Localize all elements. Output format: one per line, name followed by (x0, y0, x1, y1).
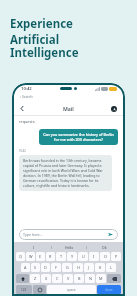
button[interactable]: Key (16, 274, 29, 283)
staticText: Can you summarize the history of Berlin … (43, 132, 114, 142)
button[interactable]: Q (16, 252, 25, 261)
button[interactable]: E (36, 252, 45, 261)
button[interactable]: U (78, 252, 88, 261)
staticText: Mail (63, 105, 74, 112)
staticText: S (34, 265, 37, 270)
button[interactable]: I (89, 252, 99, 261)
staticText: space (67, 288, 76, 292)
staticText: Artificial Intelligence (10, 32, 129, 61)
other: Send (107, 231, 114, 238)
staticText: B (78, 276, 81, 281)
staticText: 123 (21, 288, 27, 292)
staticText: Q (19, 254, 22, 259)
staticText: H (77, 265, 80, 270)
staticText: U (82, 254, 85, 259)
button[interactable]: J (84, 263, 94, 272)
staticText: C (56, 276, 59, 281)
staticText: E (39, 254, 42, 259)
button[interactable]: K (95, 263, 105, 272)
button[interactable]: Back (18, 104, 27, 113)
button[interactable]: Key (107, 274, 121, 283)
staticText: A (24, 265, 27, 270)
staticText: Experience (10, 16, 73, 32)
button[interactable]: C (52, 274, 62, 283)
button[interactable]: Can you summarize the history of Berlin … (39, 129, 118, 145)
staticText: Hello (65, 245, 74, 250)
button[interactable]: B (74, 274, 84, 283)
button[interactable]: T (56, 252, 66, 261)
button[interactable]: Berlin was founded in the 13th century, … (19, 155, 112, 191)
button[interactable]: I (16, 244, 51, 250)
button[interactable]: Y (67, 252, 77, 261)
staticText: O (104, 254, 107, 259)
staticText: Ok (102, 245, 107, 250)
button[interactable]: R (46, 252, 55, 261)
staticText: J (88, 265, 90, 270)
button[interactable]: Ok (87, 244, 121, 250)
button[interactable]: Type here... (19, 229, 118, 240)
staticText: ‹ Search (20, 94, 33, 99)
staticText: L (110, 265, 112, 270)
button[interactable]: N (85, 274, 95, 283)
staticText: I (93, 254, 95, 259)
staticText: D (44, 265, 47, 270)
button[interactable]: Hello (52, 244, 86, 250)
staticText: N (89, 276, 92, 281)
staticText: W (29, 254, 33, 259)
staticText: requests. (19, 119, 36, 124)
staticText: T (60, 254, 63, 259)
button[interactable]: P (111, 252, 121, 261)
staticText: P (115, 254, 118, 259)
staticText: Berlin was founded in the 13th century, … (23, 158, 108, 188)
staticText: done (105, 288, 113, 292)
staticText: Y (71, 254, 74, 259)
staticText: G (66, 265, 69, 270)
button[interactable]: M (96, 274, 106, 283)
button[interactable]: S (31, 263, 40, 272)
staticText: I (33, 245, 35, 250)
staticText: Z (34, 276, 37, 281)
button[interactable]: A (21, 263, 30, 272)
button[interactable]: G (62, 263, 72, 272)
button[interactable]: done (97, 285, 121, 294)
staticText: M (99, 276, 103, 281)
button[interactable]: space (47, 285, 96, 294)
button[interactable]: L (106, 263, 116, 272)
staticText: X (45, 276, 48, 281)
button[interactable]: W (26, 252, 35, 261)
staticText: 10:42 (21, 86, 32, 92)
button[interactable]: Emoji (33, 285, 46, 294)
staticText: 10:42 (19, 149, 26, 153)
staticText: K (99, 265, 102, 270)
button[interactable]: D (41, 263, 50, 272)
staticText: Type here... (23, 232, 107, 237)
button[interactable]: Account (109, 104, 118, 113)
button[interactable]: H (73, 263, 83, 272)
button[interactable]: V (63, 274, 73, 283)
button[interactable]: O (100, 252, 110, 261)
staticText: R (49, 254, 52, 259)
staticText: F (55, 265, 57, 270)
staticText: V (67, 276, 70, 281)
button[interactable]: Z (30, 274, 40, 283)
button[interactable]: X (41, 274, 51, 283)
button[interactable]: F (51, 263, 61, 272)
button[interactable]: 123 (16, 285, 32, 294)
